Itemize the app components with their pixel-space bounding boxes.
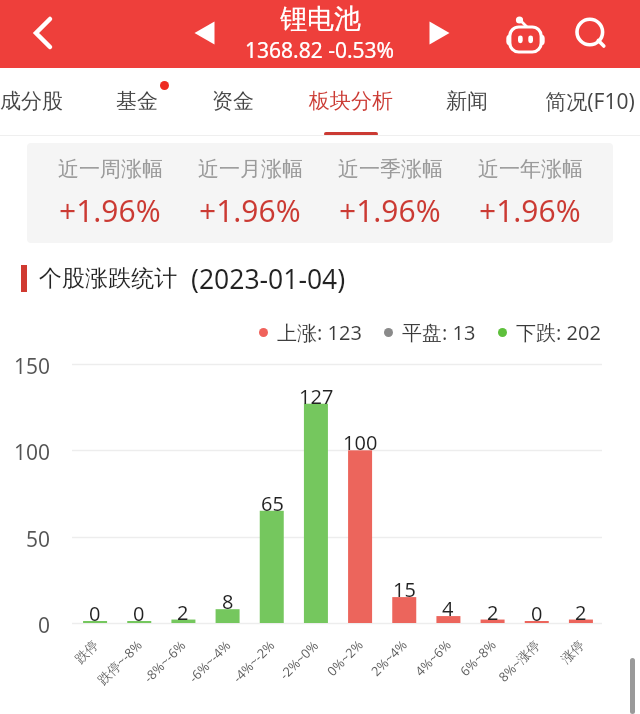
staticText: 跌停 [71,637,101,666]
button[interactable]: 近一周涨幅 [40,143,180,243]
staticText: (2023-01-04) [191,261,346,295]
staticText: 1368.82 -0.53% [245,36,395,65]
staticText: 0 [133,600,145,625]
button[interactable]: 成分股 [0,68,91,132]
staticText: 2 [487,599,499,624]
staticText: 下跌: 202 [516,319,601,346]
staticText: 资金 [212,88,254,114]
staticText: +1.96% [199,190,301,231]
staticText: 近一季涨幅 [338,156,443,182]
staticText: 平盘: 13 [402,319,476,346]
staticText: 个股涨跌统计 [39,264,177,293]
staticText: -6%~-4% [184,636,235,686]
staticText: 0 [38,611,51,639]
staticText: 100 [343,429,378,454]
staticText: 8%~涨停 [494,636,544,685]
staticText: 6%~8% [456,636,500,680]
staticText: 近一年涨幅 [478,156,583,182]
button[interactable]: Back [20,11,66,57]
staticText: 新闻 [446,88,488,114]
staticText: +1.96% [339,190,441,231]
button[interactable]: 近一季涨幅 [320,143,460,243]
staticText: +1.96% [59,190,161,231]
button[interactable]: 平盘: 13 [384,319,476,346]
button[interactable]: 简况(F10) [530,68,640,132]
staticText: 100 [14,438,51,466]
staticText: 15 [393,576,416,601]
button[interactable]: 近一年涨幅 [460,143,600,243]
staticText: 锂电池 [280,2,361,36]
staticText: 成分股 [0,88,63,114]
button[interactable]: 近一月涨幅 [180,143,320,243]
staticText: 跌停~-8% [93,636,146,688]
button[interactable]: Search [567,11,613,57]
staticText: -2%~0% [275,636,323,683]
button[interactable]: Previous sector [182,11,228,57]
button[interactable]: AI assistant [501,11,547,57]
staticText: 涨停 [557,637,587,666]
staticText: +1.96% [479,190,581,231]
staticText: 4%~6% [411,636,455,680]
staticText: 50 [26,525,51,553]
staticText: 上涨: 123 [277,319,362,346]
button[interactable]: 板块分析 [291,68,411,132]
staticText: 150 [14,352,51,380]
staticText: 近一周涨幅 [58,156,163,182]
staticText: 板块分析 [309,88,393,114]
staticText: 基金 [116,88,158,114]
staticText: 2%~4% [367,636,411,680]
staticText: 2 [177,599,189,624]
staticText: 0 [531,600,543,625]
staticText: 简况(F10) [545,87,635,116]
staticText: 0 [89,600,101,625]
button[interactable]: 资金 [173,68,293,132]
button[interactable]: 新闻 [407,68,527,132]
button[interactable]: 上涨: 123 [259,319,362,346]
button[interactable]: Next sector [416,11,462,57]
staticText: 8 [222,588,234,613]
staticText: 0%~2% [323,636,367,680]
staticText: 近一月涨幅 [198,156,303,182]
button[interactable]: 下跌: 202 [498,319,601,346]
staticText: 127 [299,383,334,408]
staticText: 2 [575,599,587,624]
button[interactable]: 基金 [77,68,197,132]
staticText: -8%~-6% [139,636,190,686]
staticText: 65 [261,490,284,515]
staticText: 4 [442,595,454,620]
staticText: -4%~-2% [228,636,279,686]
